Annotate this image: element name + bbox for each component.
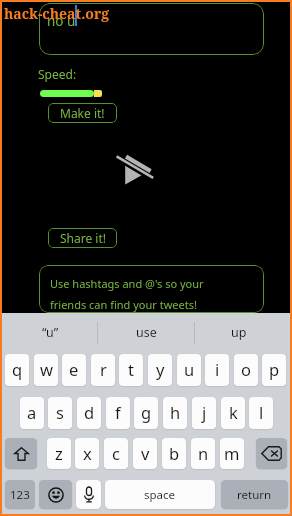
button[interactable]: 123 bbox=[5, 480, 35, 509]
staticText: no u bbox=[47, 12, 76, 30]
button[interactable]: l bbox=[249, 397, 273, 429]
button[interactable]: Backspace bbox=[256, 438, 287, 469]
button[interactable]: h bbox=[163, 397, 187, 429]
button[interactable]: Shift bbox=[5, 438, 37, 469]
button[interactable]: Emoji bbox=[39, 480, 72, 509]
button[interactable]: f bbox=[106, 397, 130, 429]
staticText: c bbox=[112, 442, 120, 464]
button[interactable]: n bbox=[191, 438, 215, 469]
staticText: hack-cheat.org bbox=[4, 4, 110, 23]
button[interactable]: u bbox=[177, 354, 201, 386]
button[interactable]: no u bbox=[39, 3, 264, 55]
button[interactable]: v bbox=[133, 438, 157, 469]
staticText: s bbox=[56, 401, 64, 423]
staticText: u bbox=[184, 358, 195, 380]
button[interactable]: return bbox=[221, 480, 288, 509]
staticText: “u” bbox=[42, 324, 59, 341]
button[interactable]: Play bbox=[114, 154, 158, 190]
button[interactable]: d bbox=[77, 397, 101, 429]
staticText: e bbox=[69, 358, 79, 380]
staticText: return bbox=[237, 487, 272, 503]
staticText: q bbox=[12, 358, 23, 380]
button[interactable]: Use hashtags and @'s so your bbox=[39, 265, 264, 313]
staticText: up bbox=[231, 324, 247, 341]
button[interactable]: c bbox=[104, 438, 128, 469]
button[interactable]: k bbox=[221, 397, 245, 429]
staticText: b bbox=[169, 442, 180, 464]
button[interactable]: t bbox=[119, 354, 143, 386]
staticText: i bbox=[215, 358, 220, 380]
staticText: f bbox=[115, 401, 121, 423]
button[interactable]: space bbox=[105, 480, 215, 509]
button[interactable]: Speed slider bbox=[40, 90, 101, 97]
button[interactable]: r bbox=[91, 354, 115, 386]
staticText: m bbox=[224, 442, 240, 464]
button[interactable]: i bbox=[205, 354, 229, 386]
staticText: t bbox=[128, 358, 134, 380]
staticText: space bbox=[144, 487, 176, 503]
staticText: h bbox=[170, 401, 181, 423]
button[interactable]: j bbox=[192, 397, 216, 429]
button[interactable]: Dictate bbox=[76, 480, 101, 509]
button[interactable]: up bbox=[195, 317, 283, 347]
button[interactable]: s bbox=[48, 397, 72, 429]
staticText: p bbox=[269, 358, 280, 380]
button[interactable]: Share it! bbox=[48, 228, 117, 248]
button[interactable]: b bbox=[162, 438, 186, 469]
staticText: Make it! bbox=[60, 105, 105, 121]
staticText: a bbox=[27, 401, 37, 423]
button[interactable]: use bbox=[102, 317, 190, 347]
button[interactable]: z bbox=[47, 438, 71, 469]
button[interactable]: w bbox=[34, 354, 58, 386]
staticText: l bbox=[259, 401, 264, 423]
staticText: Use hashtags and @'s so your bbox=[50, 276, 204, 291]
staticText: d bbox=[84, 401, 95, 423]
button[interactable]: “u” bbox=[6, 317, 94, 347]
button[interactable]: p bbox=[262, 354, 286, 386]
staticText: z bbox=[55, 442, 63, 464]
button[interactable]: o bbox=[234, 354, 258, 386]
button[interactable]: Make it! bbox=[48, 103, 117, 123]
staticText: v bbox=[141, 442, 150, 464]
staticText: Share it! bbox=[60, 230, 106, 246]
staticText: x bbox=[83, 442, 92, 464]
button[interactable]: g bbox=[134, 397, 158, 429]
staticText: g bbox=[141, 401, 152, 423]
staticText: 123 bbox=[10, 487, 30, 503]
button[interactable]: x bbox=[75, 438, 99, 469]
button[interactable]: q bbox=[5, 354, 29, 386]
staticText: n bbox=[198, 442, 209, 464]
staticText: r bbox=[100, 358, 107, 380]
staticText: j bbox=[202, 401, 207, 423]
staticText: Speed: bbox=[38, 66, 77, 82]
staticText: friends can find your tweets! bbox=[50, 297, 197, 312]
button[interactable]: m bbox=[220, 438, 244, 469]
button[interactable]: y bbox=[148, 354, 172, 386]
staticText: o bbox=[241, 358, 251, 380]
button[interactable]: a bbox=[20, 397, 44, 429]
staticText: k bbox=[229, 401, 238, 423]
button[interactable]: e bbox=[62, 354, 86, 386]
staticText: y bbox=[156, 358, 165, 380]
staticText: use bbox=[136, 324, 157, 341]
staticText: w bbox=[40, 358, 53, 380]
